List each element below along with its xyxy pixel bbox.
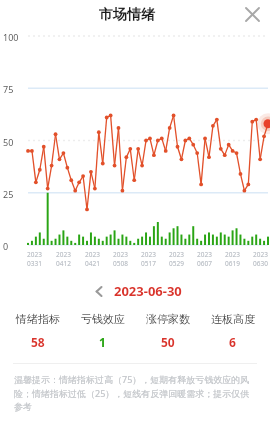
staticText: 情绪指标 [16, 312, 60, 326]
staticText: 涨停家数 [146, 312, 190, 326]
staticText: 2023 0607 [197, 250, 212, 268]
button[interactable]: 连板高度 [200, 312, 265, 350]
staticText: 2023 0508 [113, 250, 128, 268]
staticText: 25 [3, 188, 14, 200]
button[interactable]: 涨停家数 [135, 312, 200, 350]
staticText: 2023 0630 [253, 250, 268, 268]
staticText: 2023 0619 [225, 250, 240, 268]
button[interactable]: Previous day [88, 280, 110, 302]
staticText: 0 [3, 240, 9, 252]
staticText: 温馨提示：情绪指标过高（75），短期有释放亏钱效应的风险；情绪指标过低（25），… [14, 373, 256, 413]
staticText: 50 [161, 334, 175, 350]
button[interactable]: Close [239, 1, 265, 27]
staticText: 50 [3, 136, 14, 148]
staticText: 2023 0331 [27, 250, 42, 268]
button[interactable]: 2023-06-30 [114, 282, 182, 300]
staticText: 2023 0517 [141, 250, 156, 268]
staticText: 市场情绪 [99, 6, 155, 24]
staticText: 连板高度 [211, 312, 255, 326]
staticText: 6 [229, 334, 236, 350]
staticText: 亏钱效应 [81, 312, 125, 326]
staticText: 100 [3, 31, 19, 43]
staticText: 2023 0412 [56, 250, 71, 268]
button[interactable]: 亏钱效应 [70, 312, 135, 350]
staticText: 58 [31, 334, 45, 350]
staticText: 2023-06-30 [114, 282, 182, 300]
staticText: 2023 0529 [169, 250, 184, 268]
staticText: 1 [99, 334, 106, 350]
staticText: 75 [3, 83, 14, 95]
staticText: 2023 0421 [85, 250, 100, 268]
button[interactable]: 情绪指标 [5, 312, 70, 350]
